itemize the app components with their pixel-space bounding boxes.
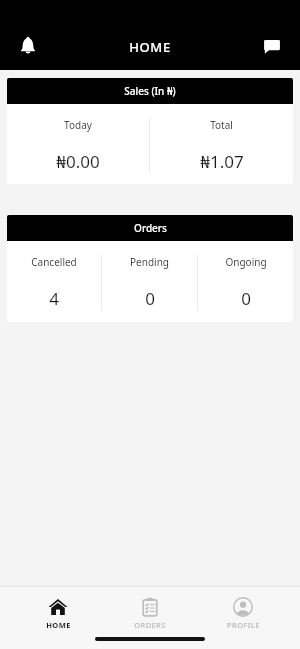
button[interactable]: Notifications: [8, 26, 48, 66]
staticText: 4: [49, 287, 59, 310]
staticText: Pending: [130, 255, 169, 269]
button[interactable]: Orders: [7, 215, 293, 322]
staticText: ORDERS: [134, 620, 166, 630]
staticText: 0: [241, 287, 251, 310]
staticText: ₦0.00: [56, 150, 100, 173]
staticText: Ongoing: [225, 255, 267, 269]
button[interactable]: Sales (In ₦): [7, 78, 293, 184]
button[interactable]: HOME: [23, 595, 93, 632]
staticText: 0: [145, 287, 155, 310]
staticText: ₦1.07: [200, 150, 244, 173]
button[interactable]: Messages: [252, 26, 292, 66]
staticText: Today: [64, 118, 92, 132]
staticText: Sales (In ₦): [124, 84, 176, 98]
staticText: HOME: [129, 38, 171, 56]
button[interactable]: ORDERS: [115, 595, 185, 632]
staticText: Cancelled: [31, 255, 77, 269]
staticText: Total: [210, 118, 233, 132]
staticText: PROFILE: [227, 620, 260, 630]
staticText: Orders: [134, 221, 167, 235]
staticText: HOME: [46, 620, 71, 630]
button[interactable]: PROFILE: [208, 595, 278, 632]
